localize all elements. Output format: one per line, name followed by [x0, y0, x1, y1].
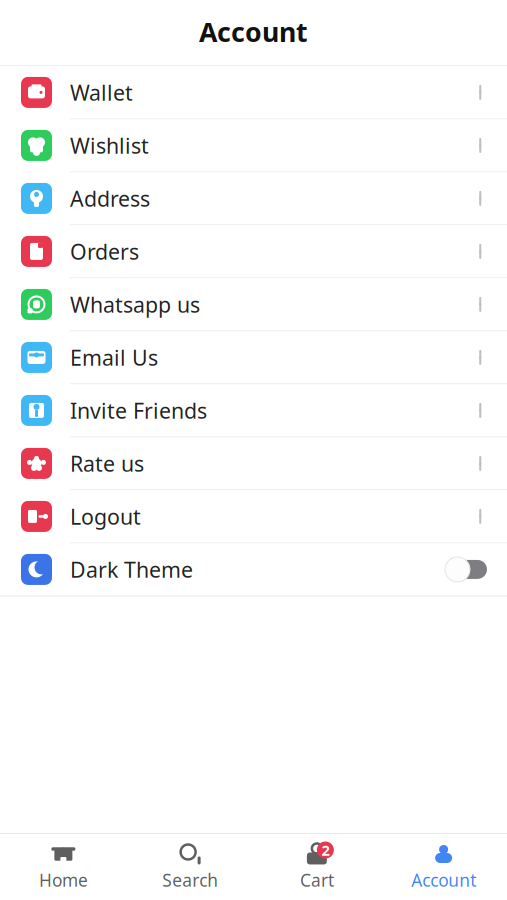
- staticText: Dark Theme: [70, 555, 193, 583]
- staticText: Email Us: [70, 343, 158, 371]
- button[interactable]: Logout: [0, 490, 507, 542]
- button[interactable]: Address: [0, 172, 507, 224]
- button[interactable]: Invite Friends: [0, 384, 507, 436]
- button[interactable]: Whatsapp us: [0, 278, 507, 330]
- staticText: Whatsapp us: [70, 290, 200, 318]
- button[interactable]: Dark Theme: [0, 543, 507, 595]
- button[interactable]: Wishlist: [0, 119, 507, 171]
- staticText: 2: [321, 840, 329, 860]
- staticText: Orders: [70, 237, 139, 265]
- button[interactable]: Orders: [0, 225, 507, 277]
- staticText: Home: [39, 868, 88, 891]
- staticText: Account: [199, 14, 308, 49]
- button[interactable]: Wallet: [0, 66, 507, 118]
- staticText: Cart: [300, 868, 334, 891]
- staticText: Logout: [70, 502, 141, 530]
- button[interactable]: 2: [253, 832, 380, 900]
- button[interactable]: Rate us: [0, 437, 507, 489]
- staticText: Account: [411, 868, 476, 891]
- button[interactable]: Home: [0, 832, 127, 900]
- staticText: Wallet: [70, 78, 133, 106]
- staticText: Search: [162, 868, 218, 891]
- button[interactable]: Account: [380, 832, 507, 900]
- button[interactable]: Email Us: [0, 331, 507, 383]
- staticText: Rate us: [70, 449, 144, 477]
- staticText: Invite Friends: [70, 396, 207, 424]
- staticText: Address: [70, 184, 150, 212]
- button[interactable]: Search: [127, 832, 254, 900]
- staticText: Wishlist: [70, 131, 149, 159]
